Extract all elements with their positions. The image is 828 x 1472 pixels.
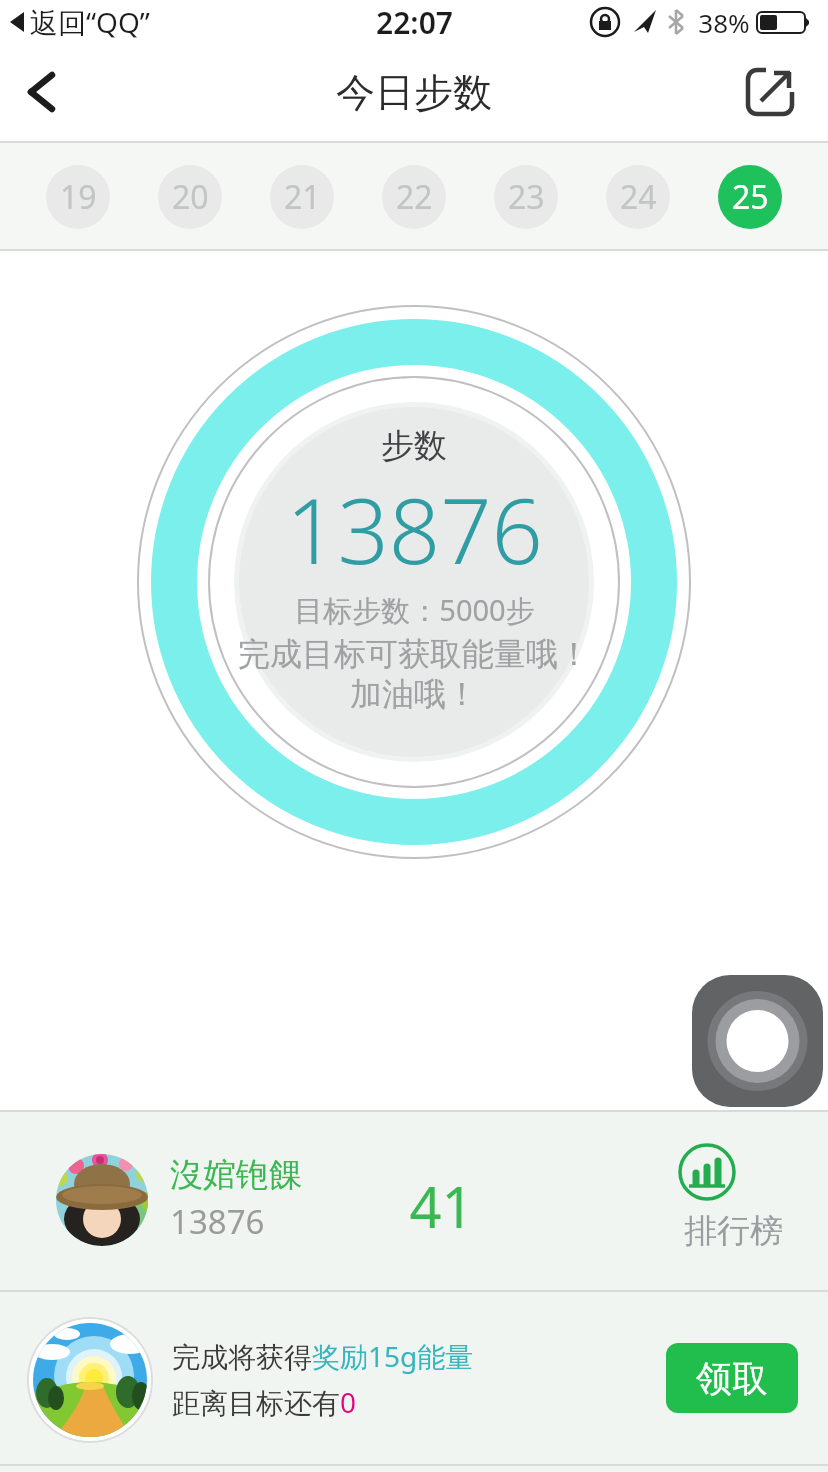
staticText: 20 (172, 175, 209, 219)
button[interactable]: 22 (382, 165, 446, 229)
staticText: 返回“QQ” (30, 3, 150, 41)
staticText: 沒婠铇餜 (170, 1154, 302, 1196)
staticText: 21 (284, 175, 321, 219)
button[interactable] (14, 62, 74, 122)
staticText: 距离目标还有0 (172, 1383, 357, 1421)
staticText: 领取 (696, 1356, 768, 1401)
staticText: 加油哦！ (350, 674, 478, 714)
staticText: 24 (620, 175, 657, 219)
button[interactable]: 23 (494, 165, 558, 229)
button[interactable]: 19 (46, 165, 110, 229)
staticText: 排行榜 (684, 1210, 783, 1252)
staticText: 38% (698, 5, 750, 40)
staticText: 25 (732, 175, 769, 219)
staticText: 22:07 (376, 2, 453, 43)
staticText: 13876 (286, 468, 543, 591)
staticText: 完成将获得奖励15g能量 (172, 1337, 474, 1375)
button[interactable]: 20 (158, 165, 222, 229)
button[interactable]: 领取 (666, 1343, 798, 1413)
button[interactable]: 21 (270, 165, 334, 229)
staticText: 13876 (170, 1199, 265, 1244)
staticText: 今日步数 (336, 68, 492, 117)
staticText: 41 (409, 1168, 474, 1244)
staticText: 步数 (381, 425, 447, 467)
staticText: 22 (396, 175, 433, 219)
button[interactable]: 24 (606, 165, 670, 229)
button[interactable]: 25 (718, 165, 782, 229)
staticText: 23 (508, 175, 545, 219)
staticText: 完成目标可获取能量哦！ (238, 634, 590, 674)
button[interactable] (740, 62, 800, 122)
button[interactable]: 排行榜 (666, 1136, 800, 1252)
staticText: 目标步数：5000步 (294, 590, 535, 630)
staticText: 19 (60, 175, 97, 219)
button[interactable] (692, 975, 823, 1107)
